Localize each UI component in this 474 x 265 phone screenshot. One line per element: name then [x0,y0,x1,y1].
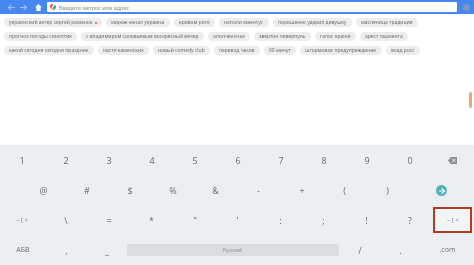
button[interactable]: перевод часов [214,46,260,55]
staticText: # [84,184,90,196]
button[interactable]: % [151,175,194,205]
button[interactable]: ( [323,175,366,205]
button[interactable]: настя каменских [98,46,149,55]
staticText: перевод часов [219,47,255,54]
button[interactable]: . [380,235,421,265]
button[interactable]: ) [366,175,409,205]
button[interactable]: ополченочка [208,32,250,41]
staticText: 7 [278,154,284,166]
button[interactable]: 60 минут [264,46,296,55]
staticText: ополченочка [213,33,245,40]
button[interactable]: какой сегодня сегодня праздник [4,46,94,55]
button[interactable]: + [280,175,323,205]
button[interactable]: 8 [302,145,345,175]
staticText: 9 [364,154,370,166]
button[interactable]: Home [32,1,44,13]
staticText: @ [39,184,48,196]
button[interactable]: голос краiни [315,32,356,41]
button[interactable]: - [237,175,280,205]
staticText: настя каменских [103,47,144,54]
button[interactable]: ? [388,205,431,235]
button[interactable]: Back [5,1,17,13]
button[interactable]: влад росс [386,46,420,55]
staticText: 4 [149,154,155,166]
button[interactable]: 7 [259,145,302,175]
staticText: + [299,184,305,196]
button[interactable]: 1 [0,145,44,175]
button[interactable]: АБВ [0,235,46,265]
button[interactable]: $ [108,175,151,205]
button[interactable]: 4 [130,145,173,175]
staticText: прогноз погоды синоптик [9,33,72,40]
button[interactable]: ~ [ < [0,205,44,235]
button[interactable]: прогноз погоды синоптик [4,32,77,41]
button[interactable]: \ [44,205,87,235]
staticText: 8 [321,154,327,166]
staticText: новый comedy club [158,47,205,54]
button[interactable]: 5 [173,145,216,175]
button[interactable]: 0 [388,145,431,175]
button[interactable]: мираж канал украина [106,18,170,27]
staticText: 60 минут [269,47,291,54]
staticText: / [358,244,362,256]
button[interactable]: Tabs [461,2,471,12]
staticText: " [193,214,197,226]
button[interactable]: с владимиром соловьевым воскресный вечер [81,32,204,41]
button[interactable]: .com [421,235,474,265]
button[interactable]: ! [345,205,388,235]
staticText: ! [365,214,368,226]
staticText: 5 [192,154,198,166]
staticText: с владимиром соловьевым воскресный вечер [86,33,199,40]
button[interactable]: эвертон ливерпуль [254,32,311,41]
button[interactable]: / [339,235,380,265]
staticText: кривом роге [179,19,210,26]
button[interactable]: кривом роге [174,18,215,27]
button[interactable]: = [87,205,130,235]
button[interactable]: ; [302,205,345,235]
button[interactable]: 9 [345,145,388,175]
staticText: * [149,214,154,226]
button[interactable]: Symbols [433,207,472,233]
button[interactable]: _ [86,235,127,265]
button[interactable]: : [259,205,302,235]
button[interactable]: # [65,175,108,205]
staticText: масленица традиции [361,19,413,26]
staticText: арест ташкента [365,33,403,40]
button[interactable]: штормовое предупреждение [300,46,382,55]
button[interactable]: , [46,235,86,265]
button[interactable]: арест ташкента [360,32,408,41]
button[interactable]: Space [127,244,339,256]
button[interactable]: 6 [216,145,259,175]
staticText: голос краiни [320,33,351,40]
staticText: ) [386,184,389,196]
button[interactable]: наполи ювентус [219,18,269,27]
button[interactable]: * [130,205,173,235]
button[interactable]: Backspace [431,145,474,175]
staticText: - [257,184,260,196]
staticText: ? [408,214,412,226]
staticText: = [106,214,112,226]
button[interactable]: масленица традиции [356,18,418,27]
button[interactable]: ' [216,205,259,235]
staticText: 0 [407,154,413,166]
staticText: 3 [106,154,112,166]
button[interactable]: & [194,175,237,205]
button[interactable]: " [173,205,216,235]
button[interactable]: Введите запрос или адрес [47,2,457,12]
button[interactable]: @ [22,175,65,205]
button[interactable]: 3 [87,145,130,175]
staticText: штормовое предупреждение [305,47,377,54]
button[interactable]: украинский актер сергей романок [4,18,102,27]
button[interactable]: Forward [17,1,29,13]
staticText: , [65,244,68,256]
staticText: _ [105,244,109,256]
staticText: . [399,244,402,256]
button[interactable]: порошенко ударил девушку [273,18,352,27]
staticText: какой сегодня сегодня праздник [9,47,89,54]
button[interactable]: 2 [44,145,87,175]
button[interactable]: Search [409,175,474,205]
staticText: 1 [19,154,25,166]
staticText: 6 [235,154,241,166]
button[interactable]: новый comedy club [153,46,210,55]
staticText: порошенко ударил девушку [278,19,347,26]
